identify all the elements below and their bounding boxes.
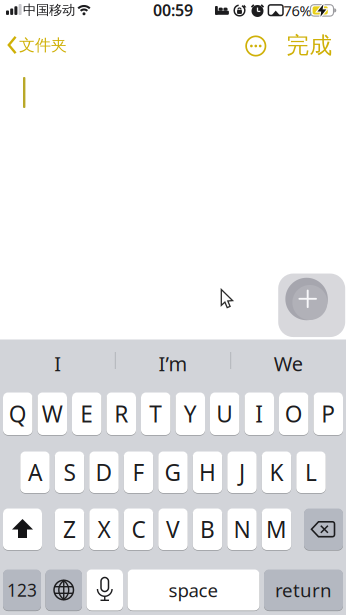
staticText: Z: [63, 514, 76, 544]
staticText: L: [305, 457, 317, 487]
button[interactable]: T: [141, 392, 170, 436]
staticText: E: [80, 399, 93, 429]
staticText: A: [28, 457, 42, 487]
button[interactable]: W: [37, 392, 67, 436]
button[interactable]: H: [193, 451, 222, 494]
staticText: V: [166, 514, 180, 544]
staticText: O: [285, 399, 303, 429]
button[interactable]: I: [3, 343, 113, 383]
button[interactable]: N: [227, 508, 257, 551]
button[interactable]: Z: [55, 508, 84, 551]
button[interactable]: [304, 508, 343, 550]
button[interactable]: G: [158, 451, 188, 494]
button[interactable]: L: [296, 451, 326, 494]
button[interactable]: [278, 274, 345, 337]
button[interactable]: K: [262, 451, 291, 494]
button[interactable]: F: [124, 451, 153, 494]
button[interactable]: Q: [3, 392, 32, 436]
button[interactable]: We: [233, 343, 343, 383]
button[interactable]: Y: [175, 392, 205, 436]
staticText: 中国移动: [23, 2, 75, 18]
button[interactable]: 123: [3, 569, 41, 611]
staticText: U: [216, 399, 233, 429]
staticText: Q: [9, 399, 27, 429]
button[interactable]: R: [106, 392, 136, 436]
button[interactable]: M: [262, 508, 291, 551]
staticText: T: [149, 399, 162, 429]
button[interactable]: 完成: [286, 32, 332, 59]
button[interactable]: B: [193, 508, 222, 551]
staticText: N: [233, 514, 250, 544]
staticText: Y: [184, 399, 197, 429]
staticText: 123: [7, 578, 37, 601]
button[interactable]: [3, 508, 42, 550]
staticText: 完成: [286, 32, 332, 59]
staticText: I: [54, 350, 61, 377]
staticText: I’m: [158, 350, 187, 377]
staticText: space: [168, 578, 218, 602]
button[interactable]: E: [72, 392, 101, 436]
staticText: R: [114, 399, 128, 429]
staticText: X: [97, 514, 110, 544]
button[interactable]: 文件夹: [6, 35, 73, 56]
staticText: P: [321, 399, 335, 429]
button[interactable]: [86, 569, 123, 610]
staticText: 文件夹: [19, 35, 67, 55]
staticText: H: [199, 457, 216, 487]
staticText: J: [239, 457, 245, 487]
staticText: S: [63, 457, 75, 487]
staticText: G: [164, 457, 181, 487]
button[interactable]: A: [20, 451, 50, 494]
staticText: F: [132, 457, 144, 487]
button[interactable]: C: [124, 508, 153, 551]
button[interactable]: P: [313, 392, 343, 436]
staticText: 76%: [283, 1, 311, 20]
staticText: I: [255, 399, 263, 429]
button[interactable]: [245, 35, 267, 57]
button[interactable]: space: [127, 569, 259, 611]
button[interactable]: I’m: [118, 343, 228, 383]
staticText: C: [131, 514, 145, 544]
button[interactable]: S: [55, 451, 84, 494]
button[interactable]: I: [244, 392, 274, 436]
staticText: K: [269, 457, 283, 487]
button[interactable]: V: [158, 508, 188, 551]
staticText: return: [275, 578, 332, 602]
staticText: W: [42, 399, 63, 429]
button[interactable]: return: [264, 569, 343, 611]
staticText: D: [95, 457, 112, 487]
staticText: B: [200, 514, 215, 544]
button[interactable]: U: [210, 392, 239, 436]
staticText: 00:59: [153, 0, 193, 21]
staticText: We: [274, 350, 303, 377]
button[interactable]: O: [279, 392, 308, 436]
button[interactable]: D: [89, 451, 119, 494]
button[interactable]: J: [227, 451, 257, 494]
staticText: M: [266, 514, 287, 544]
button[interactable]: X: [89, 508, 119, 551]
button[interactable]: [45, 569, 82, 610]
